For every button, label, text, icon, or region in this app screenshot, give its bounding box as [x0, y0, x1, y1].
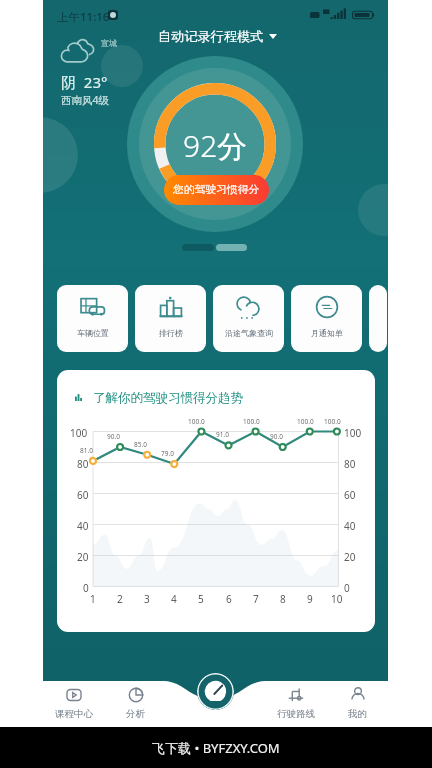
- staticText: 分析: [126, 708, 145, 720]
- button[interactable]: Start driving: [197, 673, 234, 710]
- staticText: 车辆位置: [77, 328, 109, 338]
- button[interactable]: 分析: [107, 681, 163, 727]
- staticText: 79.0: [161, 449, 174, 458]
- staticText: 9: [307, 592, 313, 606]
- staticText: 100.0: [324, 417, 341, 426]
- staticText: 100: [70, 426, 88, 440]
- staticText: 了解你的驾驶习惯得分趋势: [93, 390, 243, 406]
- button[interactable]: 自动记录行程模式: [158, 28, 277, 45]
- staticText: 60: [77, 488, 89, 502]
- staticText: 4: [171, 592, 177, 606]
- staticText: 飞下载 • BYFZXY.COM: [152, 739, 280, 757]
- staticText: 1: [90, 592, 96, 606]
- staticText: 92分: [183, 125, 248, 166]
- button[interactable]: 车辆位置: [57, 285, 128, 352]
- staticText: 月通知单: [311, 328, 343, 338]
- button[interactable]: 月通知单: [291, 285, 362, 352]
- staticText: 100.0: [243, 417, 260, 426]
- staticText: 课程中心: [55, 708, 93, 720]
- button[interactable]: 沿途气象查询: [213, 285, 284, 352]
- staticText: 80: [344, 457, 356, 471]
- staticText: 85.0: [134, 440, 147, 449]
- staticText: 阴 23°: [61, 72, 108, 92]
- staticText: 行驶路线: [277, 708, 315, 720]
- staticText: 3: [144, 592, 150, 606]
- button[interactable]: 行驶路线: [268, 681, 324, 727]
- button[interactable]: 排行榜: [135, 285, 206, 352]
- button[interactable]: 课程中心: [46, 681, 102, 727]
- staticText: 您的驾驶习惯得分: [173, 183, 260, 197]
- staticText: 90.0: [107, 432, 120, 441]
- staticText: 91.0: [216, 430, 229, 439]
- staticText: 上午11:16: [57, 9, 110, 25]
- button[interactable]: 我的: [329, 681, 385, 727]
- staticText: 0: [344, 581, 350, 595]
- staticText: 西南风4级: [61, 93, 110, 107]
- staticText: 10: [331, 592, 343, 606]
- staticText: 2: [117, 592, 123, 606]
- staticText: 100: [344, 426, 362, 440]
- staticText: 6: [226, 592, 232, 606]
- staticText: 自动记录行程模式: [158, 28, 264, 45]
- button[interactable]: 您的驾驶习惯得分: [164, 175, 269, 205]
- staticText: 7: [253, 592, 259, 606]
- staticText: 5: [198, 592, 204, 606]
- staticText: 宣城: [101, 38, 117, 48]
- staticText: 90.0: [270, 432, 283, 441]
- staticText: 40: [77, 519, 89, 533]
- staticText: 排行榜: [159, 328, 183, 338]
- staticText: 0: [83, 581, 89, 595]
- staticText: 100.0: [188, 417, 205, 426]
- staticText: 100.0: [297, 417, 314, 426]
- staticText: 我的: [348, 708, 367, 720]
- staticText: 60: [344, 488, 356, 502]
- staticText: 20: [77, 550, 89, 564]
- staticText: 8: [280, 592, 286, 606]
- staticText: 沿途气象查询: [225, 328, 273, 338]
- staticText: 81.0: [80, 446, 93, 455]
- staticText: 80: [77, 457, 89, 471]
- staticText: 40: [344, 519, 356, 533]
- staticText: 20: [344, 550, 356, 564]
